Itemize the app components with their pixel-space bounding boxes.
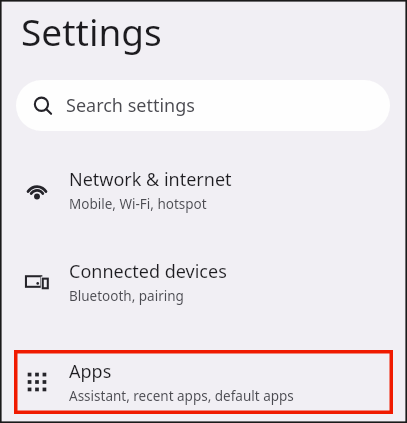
button[interactable]: Apps (4, 352, 403, 412)
staticText: Connected devices (69, 259, 227, 284)
staticText: Apps (69, 359, 112, 384)
staticText: Bluetooth, pairing (69, 287, 184, 305)
staticText: Network & internet (69, 167, 232, 192)
button[interactable]: Network & internet (4, 160, 403, 220)
button[interactable]: Search settings (16, 80, 390, 131)
staticText: Mobile, Wi-Fi, hotspot (69, 195, 207, 213)
staticText: Search settings (66, 93, 195, 118)
button[interactable]: Connected devices (4, 252, 403, 312)
staticText: Assistant, recent apps, default apps (69, 387, 294, 405)
staticText: Settings (21, 6, 162, 56)
